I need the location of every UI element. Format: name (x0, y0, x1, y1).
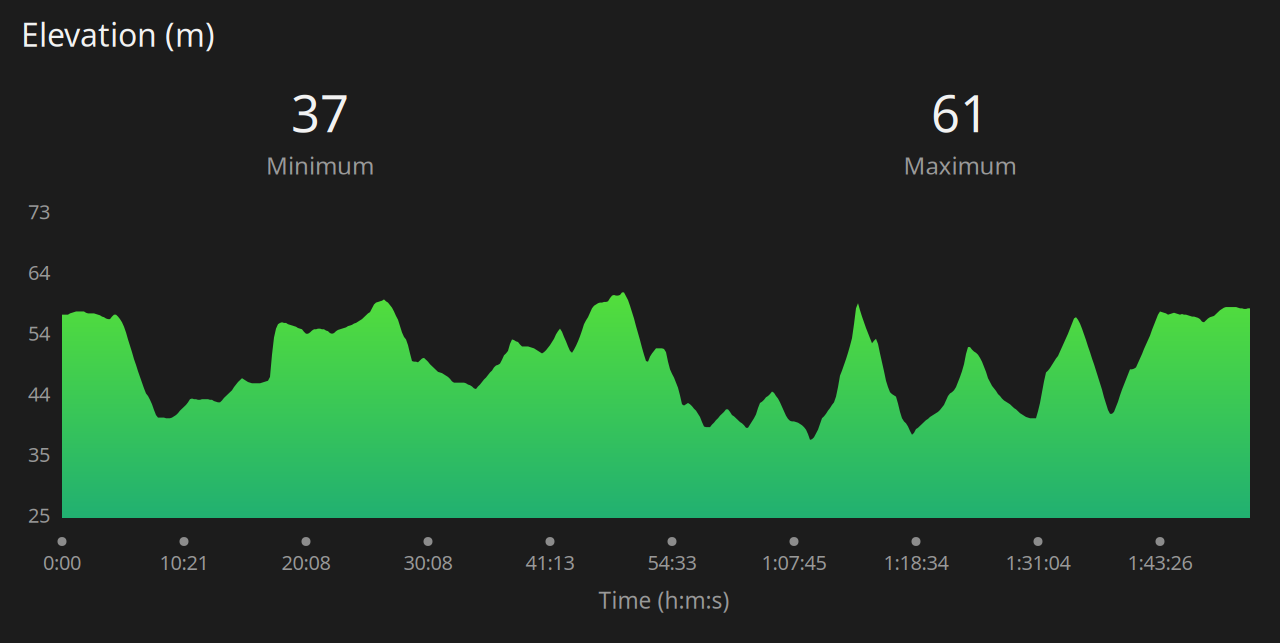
staticText: 44 (28, 380, 50, 407)
staticText: 54:33 (647, 549, 696, 576)
staticText: 1:43:26 (1127, 549, 1192, 576)
staticText: 1:31:04 (1005, 549, 1070, 576)
staticText: Time (h:m:s) (598, 585, 729, 615)
staticText: 10:21 (159, 549, 208, 576)
staticText: 73 (28, 198, 50, 225)
staticText: 0:00 (43, 549, 81, 576)
staticText: 1:07:45 (761, 549, 826, 576)
staticText: 54 (28, 320, 50, 346)
staticText: 35 (28, 441, 50, 468)
staticText: Elevation (m) (21, 13, 215, 55)
staticText: 64 (28, 259, 50, 286)
button[interactable]: Elevation profile chart (62, 213, 1250, 518)
staticText: Minimum (266, 149, 374, 181)
button[interactable]: 61 (640, 79, 1280, 181)
button[interactable]: 37 (0, 79, 640, 181)
staticText: 37 (291, 79, 349, 146)
staticText: 20:08 (281, 549, 330, 576)
staticText: 1:18:34 (883, 549, 948, 576)
staticText: Maximum (903, 149, 1016, 181)
staticText: 25 (28, 502, 50, 528)
staticText: 30:08 (403, 549, 452, 576)
staticText: 41:13 (525, 549, 574, 576)
staticText: 61 (931, 79, 989, 146)
